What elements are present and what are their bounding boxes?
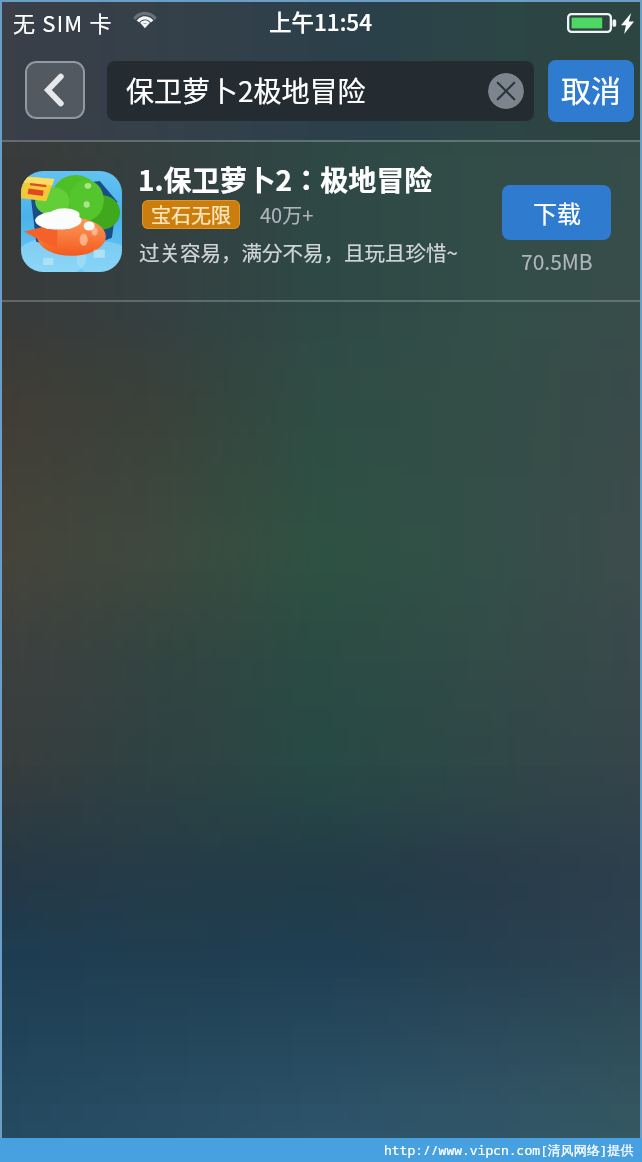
staticText: 1.保卫萝卜2：极地冒险 [138, 159, 433, 200]
staticText: 70.5MB [521, 246, 593, 276]
button[interactable]: 取消 [548, 60, 634, 122]
staticText: 宝石无限 [151, 200, 231, 229]
button[interactable]: Clear search [488, 73, 524, 109]
staticText: 下载 [533, 195, 581, 230]
staticText: 保卫萝卜2极地冒险 [126, 70, 366, 111]
button[interactable]: 1.保卫萝卜2：极地冒险 [2, 142, 640, 300]
staticText: 上午11:54 [269, 5, 373, 38]
staticText: 40万+ [260, 200, 314, 229]
staticText: 取消 [561, 67, 621, 110]
button[interactable]: 下载 [502, 185, 611, 240]
staticText: http://www.vipcn.com[清风网络]提供 [384, 1141, 634, 1159]
staticText: 过关容易，满分不易，且玩且珍惜~ [139, 237, 458, 267]
button[interactable]: 保卫萝卜2极地冒险 [107, 61, 534, 121]
button[interactable]: Back [25, 61, 85, 119]
staticText: 无 SIM 卡 [13, 6, 113, 38]
